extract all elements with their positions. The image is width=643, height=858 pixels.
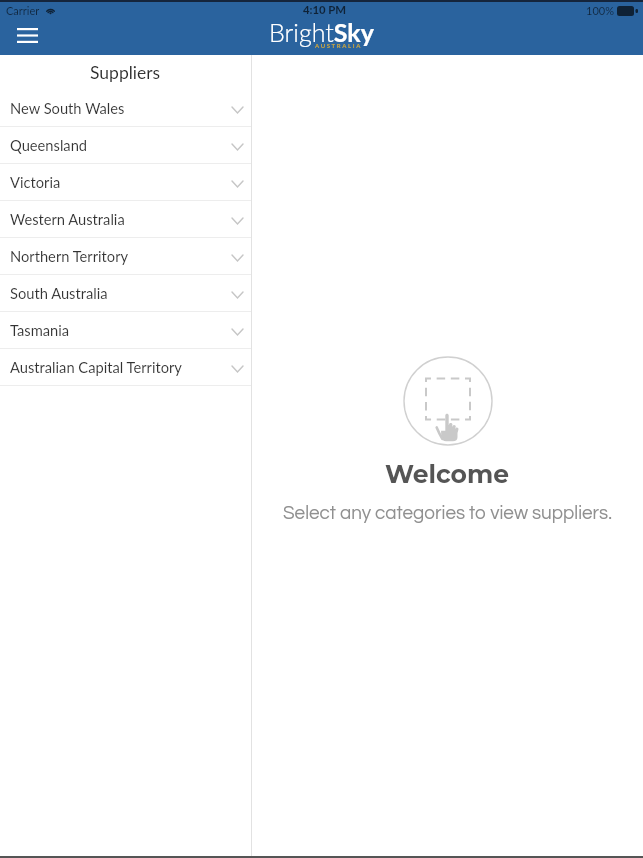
staticText: Carrier: [6, 4, 40, 17]
staticText: 4:10 PM: [303, 3, 347, 17]
staticText: Victoria: [10, 173, 61, 191]
button[interactable]: Victoria: [0, 164, 251, 201]
staticText: New South Wales: [10, 99, 125, 117]
staticText: South Australia: [10, 284, 108, 302]
staticText: BrightSky: [269, 17, 374, 47]
button[interactable]: Tasmania: [0, 312, 251, 349]
staticText: AUSTRALIA: [315, 42, 362, 49]
button[interactable]: Australian Capital Territory: [0, 349, 251, 386]
staticText: Select any categories to view suppliers.: [283, 504, 612, 523]
staticText: 100%: [586, 4, 614, 17]
staticText: Western Australia: [10, 210, 125, 228]
staticText: Australian Capital Territory: [10, 358, 182, 376]
staticText: Suppliers: [90, 62, 161, 83]
button[interactable]: South Australia: [0, 275, 251, 312]
staticText: Welcome: [385, 459, 510, 489]
staticText: Queensland: [10, 136, 88, 154]
button[interactable]: New South Wales: [0, 90, 251, 127]
staticText: Northern Territory: [10, 247, 129, 265]
staticText: Tasmania: [10, 321, 70, 339]
button[interactable]: Northern Territory: [0, 238, 251, 275]
button[interactable]: Western Australia: [0, 201, 251, 238]
button[interactable]: Menu: [7, 20, 47, 50]
button[interactable]: Queensland: [0, 127, 251, 164]
